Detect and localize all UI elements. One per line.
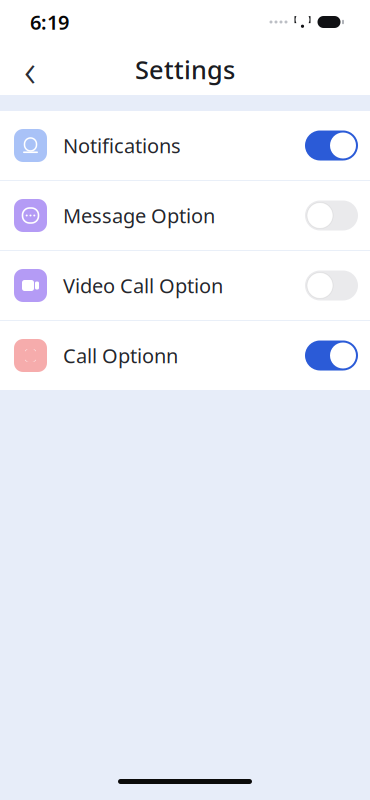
button[interactable]: Call Optionn [0,321,370,390]
staticText: 6:19 [30,9,69,35]
button[interactable]: Video Call Option [0,251,370,320]
staticText: Call Optionn [63,342,178,369]
button[interactable]: Message Option [0,181,370,250]
staticText: Message Option [63,202,215,229]
staticText: Notifications [63,132,181,159]
staticText: Settings [135,53,235,86]
staticText: ‹ [24,39,36,100]
staticText: Video Call Option [63,272,223,299]
button[interactable]: Back [8,47,52,91]
button[interactable]: Notifications [0,111,370,180]
